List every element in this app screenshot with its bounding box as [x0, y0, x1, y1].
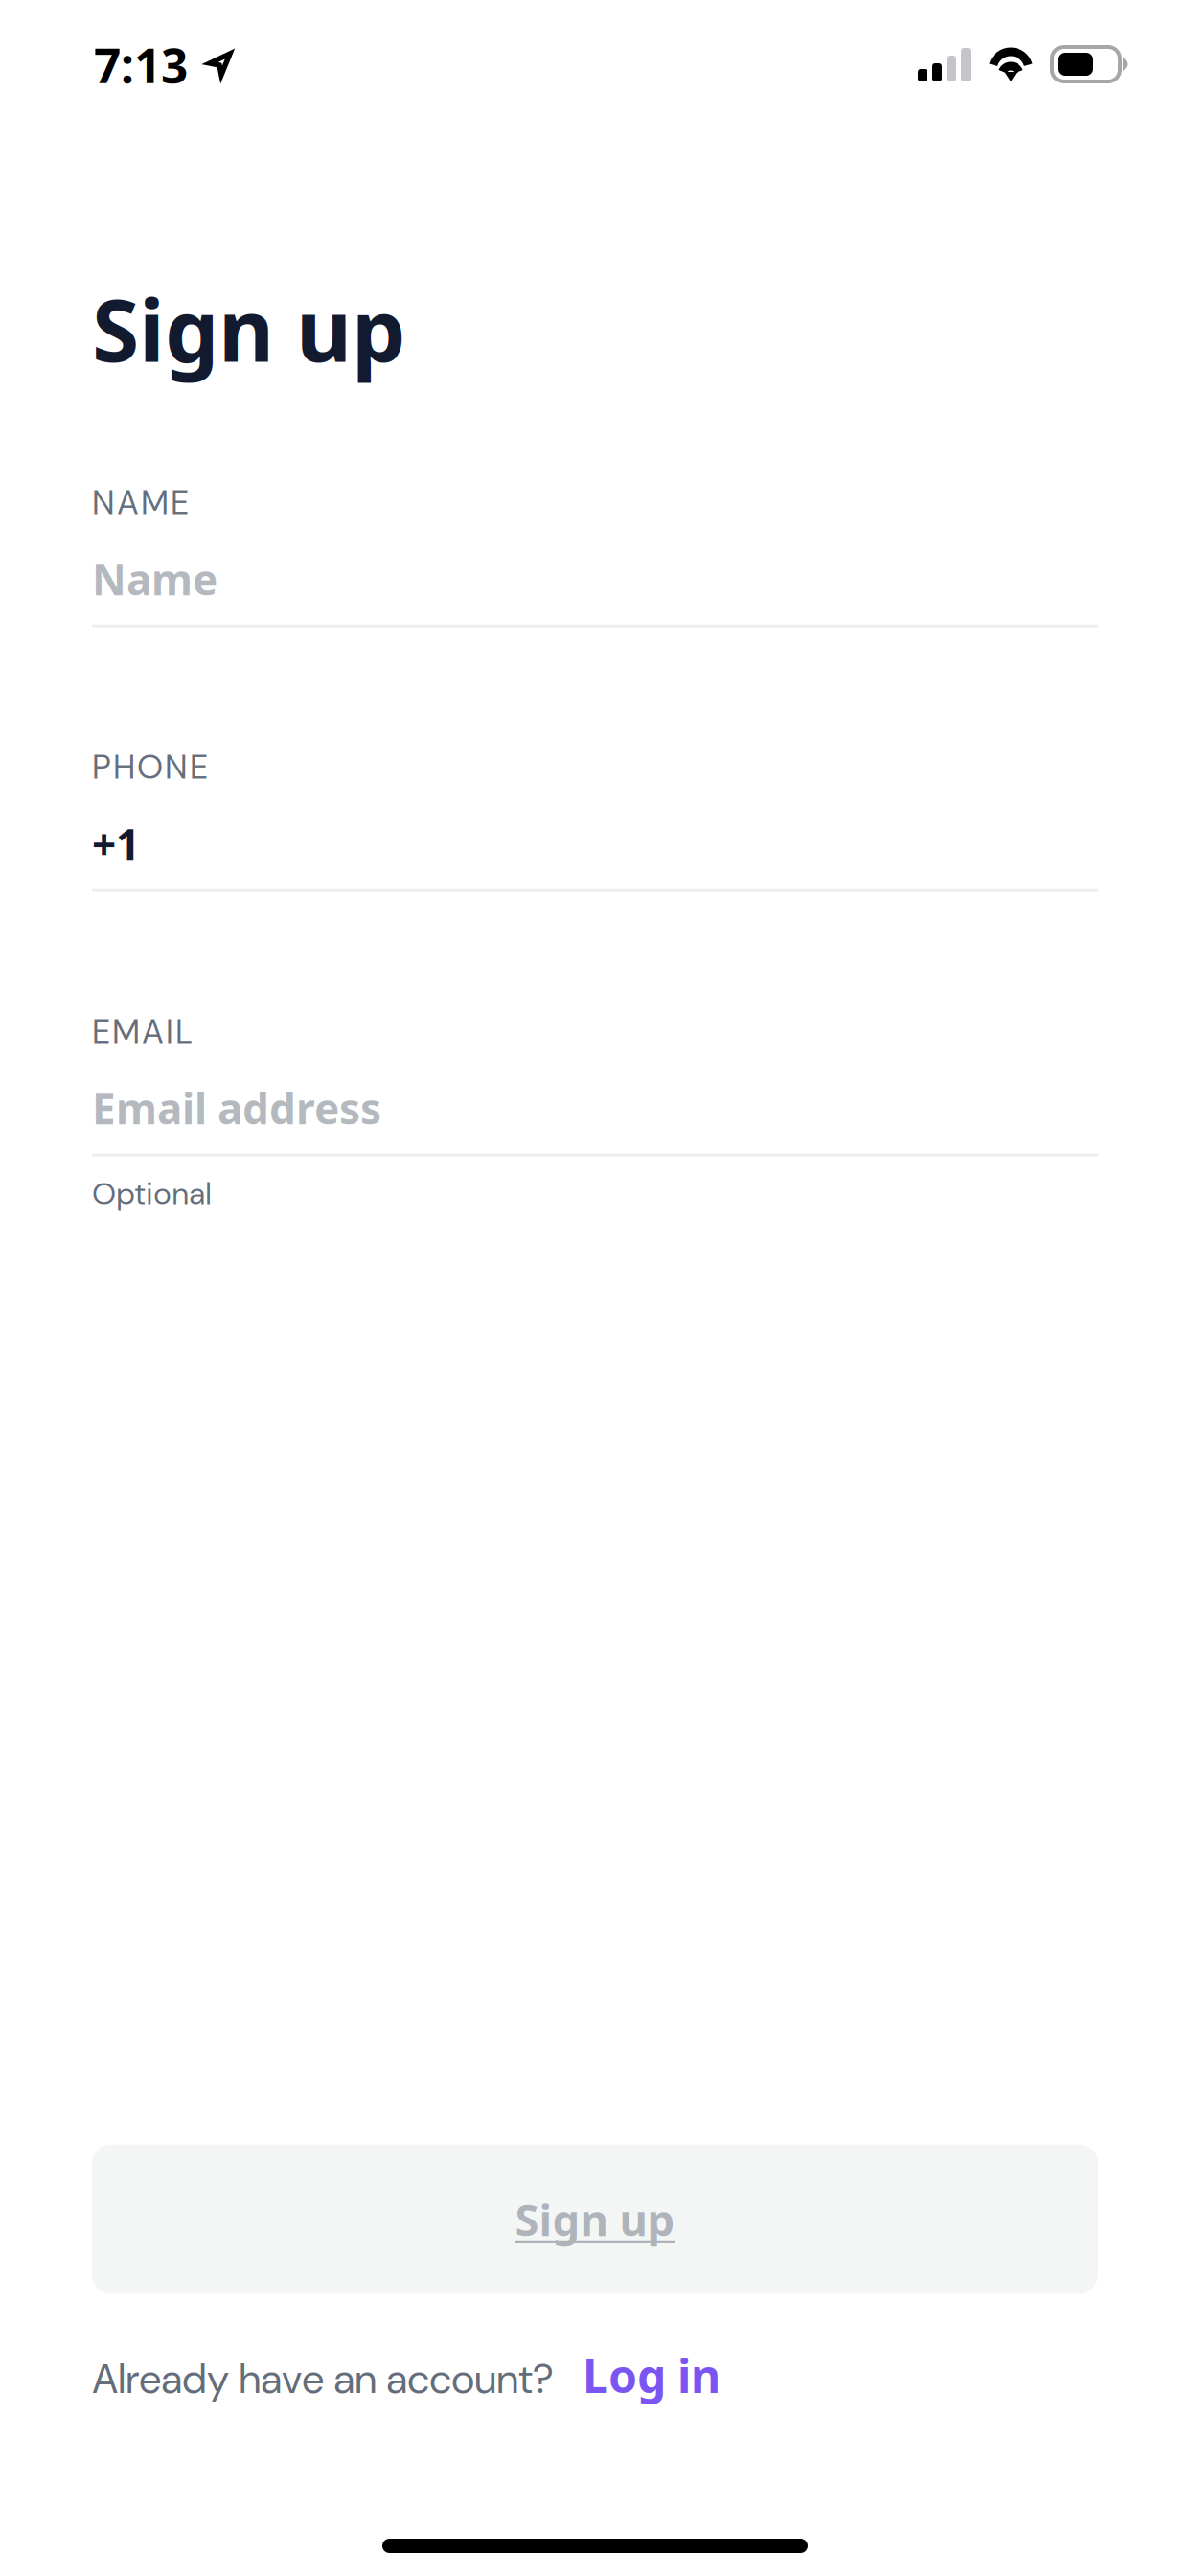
staticText: Sign up — [92, 270, 405, 387]
staticText: Log in — [583, 2344, 721, 2406]
staticText: N A M E — [92, 481, 189, 524]
staticText: Already have an account? — [92, 2352, 554, 2406]
staticText: 7:13 — [94, 33, 188, 97]
staticText: Optional — [92, 1174, 212, 1214]
staticText: E M A I L — [92, 1010, 193, 1053]
staticText: +1 — [92, 815, 140, 872]
staticText: Name — [92, 550, 217, 608]
button[interactable]: Sign up — [92, 2144, 1098, 2294]
staticText: Sign up — [515, 2190, 675, 2249]
staticText: Email address — [92, 1079, 381, 1137]
button[interactable]: Log in — [583, 2344, 721, 2406]
staticText: P H O N E — [92, 746, 208, 789]
